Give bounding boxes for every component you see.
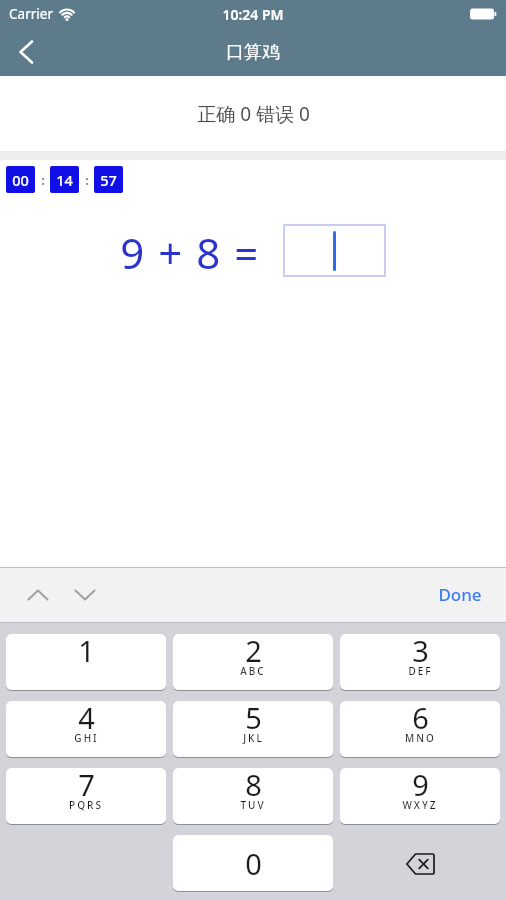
button[interactable]: [75, 589, 95, 601]
staticText: Carrier: [9, 5, 53, 23]
button[interactable]: 3: [340, 634, 500, 691]
staticText: 2: [245, 631, 262, 670]
staticText: 14: [56, 170, 73, 190]
staticText: 0: [245, 844, 262, 883]
button[interactable]: 1: [6, 634, 166, 691]
button[interactable]: 7: [6, 768, 166, 825]
staticText: 9 + 8 =: [120, 224, 260, 277]
staticText: GHI: [74, 731, 99, 745]
button[interactable]: 8: [173, 768, 333, 825]
staticText: MNO: [405, 731, 436, 745]
staticText: 8: [245, 765, 262, 804]
staticText: 4: [78, 698, 95, 737]
staticText: 7: [78, 765, 95, 804]
button[interactable]: 9: [340, 768, 500, 825]
staticText: :: [41, 171, 45, 189]
button[interactable]: [283, 224, 386, 277]
staticText: 6: [412, 698, 429, 737]
staticText: JKL: [243, 731, 264, 745]
staticText: TUV: [240, 798, 266, 812]
staticText: 57: [100, 170, 117, 190]
button[interactable]: [340, 835, 500, 892]
staticText: 1: [78, 631, 95, 670]
button[interactable]: Done: [438, 583, 482, 606]
button[interactable]: [18, 40, 34, 64]
staticText: 9: [412, 765, 429, 804]
staticText: :: [85, 171, 89, 189]
button[interactable]: 0: [173, 835, 333, 892]
staticText: 口算鸡: [226, 41, 280, 64]
staticText: 00: [12, 170, 29, 190]
staticText: DEF: [408, 664, 433, 678]
staticText: 5: [245, 698, 262, 737]
button[interactable]: 2: [173, 634, 333, 691]
button[interactable]: [28, 589, 48, 601]
button[interactable]: 6: [340, 701, 500, 758]
staticText: 3: [412, 631, 429, 670]
staticText: 正确 0 错误 0: [197, 101, 310, 127]
staticText: WXYZ: [402, 798, 438, 812]
staticText: PQRS: [69, 798, 103, 812]
staticText: Done: [438, 583, 482, 606]
staticText: 10:24 PM: [222, 5, 284, 24]
staticText: ABC: [240, 664, 266, 678]
button[interactable]: 4: [6, 701, 166, 758]
button[interactable]: 5: [173, 701, 333, 758]
